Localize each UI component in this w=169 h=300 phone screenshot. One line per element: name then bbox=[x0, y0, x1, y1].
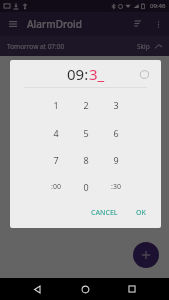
button[interactable]: 8 bbox=[71, 146, 101, 173]
staticText: 4 bbox=[53, 127, 59, 139]
staticText: 2 bbox=[83, 99, 89, 111]
staticText: 8 bbox=[83, 154, 89, 166]
staticText: 7 bbox=[53, 154, 59, 166]
button[interactable]: Back bbox=[26, 278, 48, 300]
staticText: :30 bbox=[111, 182, 121, 192]
staticText: AlarmDroid bbox=[27, 17, 83, 31]
staticText: CANCEL bbox=[91, 208, 118, 218]
button[interactable]: :30 bbox=[101, 173, 131, 200]
staticText: OK bbox=[136, 208, 146, 218]
button[interactable]: 3 bbox=[101, 91, 131, 119]
staticText: Skip bbox=[137, 42, 150, 51]
button[interactable]: 1 bbox=[40, 91, 71, 119]
staticText: 0 bbox=[83, 181, 89, 193]
staticText: 09: bbox=[67, 64, 89, 84]
button[interactable]: Open navigation drawer bbox=[3, 14, 23, 34]
staticText: 3_ bbox=[89, 64, 105, 84]
button[interactable]: Home bbox=[74, 278, 96, 300]
button[interactable]: Tomorrow at 07:00 bbox=[0, 36, 169, 56]
button[interactable]: 6 bbox=[101, 119, 131, 146]
button[interactable]: Backspace bbox=[135, 65, 153, 83]
button[interactable]: Recent apps bbox=[121, 278, 143, 300]
staticText: 3 bbox=[113, 99, 119, 111]
staticText: 1 bbox=[53, 99, 59, 111]
staticText: Tomorrow at 07:00 bbox=[7, 42, 65, 51]
button[interactable]: Sort alarms bbox=[129, 14, 149, 34]
staticText: :00 bbox=[51, 182, 61, 192]
staticText: 09:46 bbox=[150, 2, 166, 10]
button[interactable]: :00 bbox=[40, 173, 71, 200]
staticText: 9 bbox=[113, 154, 119, 166]
button[interactable]: More options bbox=[149, 15, 167, 33]
staticText: 5 bbox=[83, 127, 89, 139]
button[interactable]: 9 bbox=[101, 146, 131, 173]
staticText: 6 bbox=[113, 127, 119, 139]
button[interactable]: 7 bbox=[40, 146, 71, 173]
button[interactable]: 2 bbox=[71, 91, 101, 119]
button[interactable]: Add alarm bbox=[133, 242, 159, 268]
button[interactable]: 5 bbox=[71, 119, 101, 146]
button[interactable]: CANCEL bbox=[86, 205, 123, 221]
button[interactable]: 4 bbox=[40, 119, 71, 146]
button[interactable]: 0 bbox=[71, 173, 101, 200]
button[interactable]: OK bbox=[131, 205, 151, 221]
